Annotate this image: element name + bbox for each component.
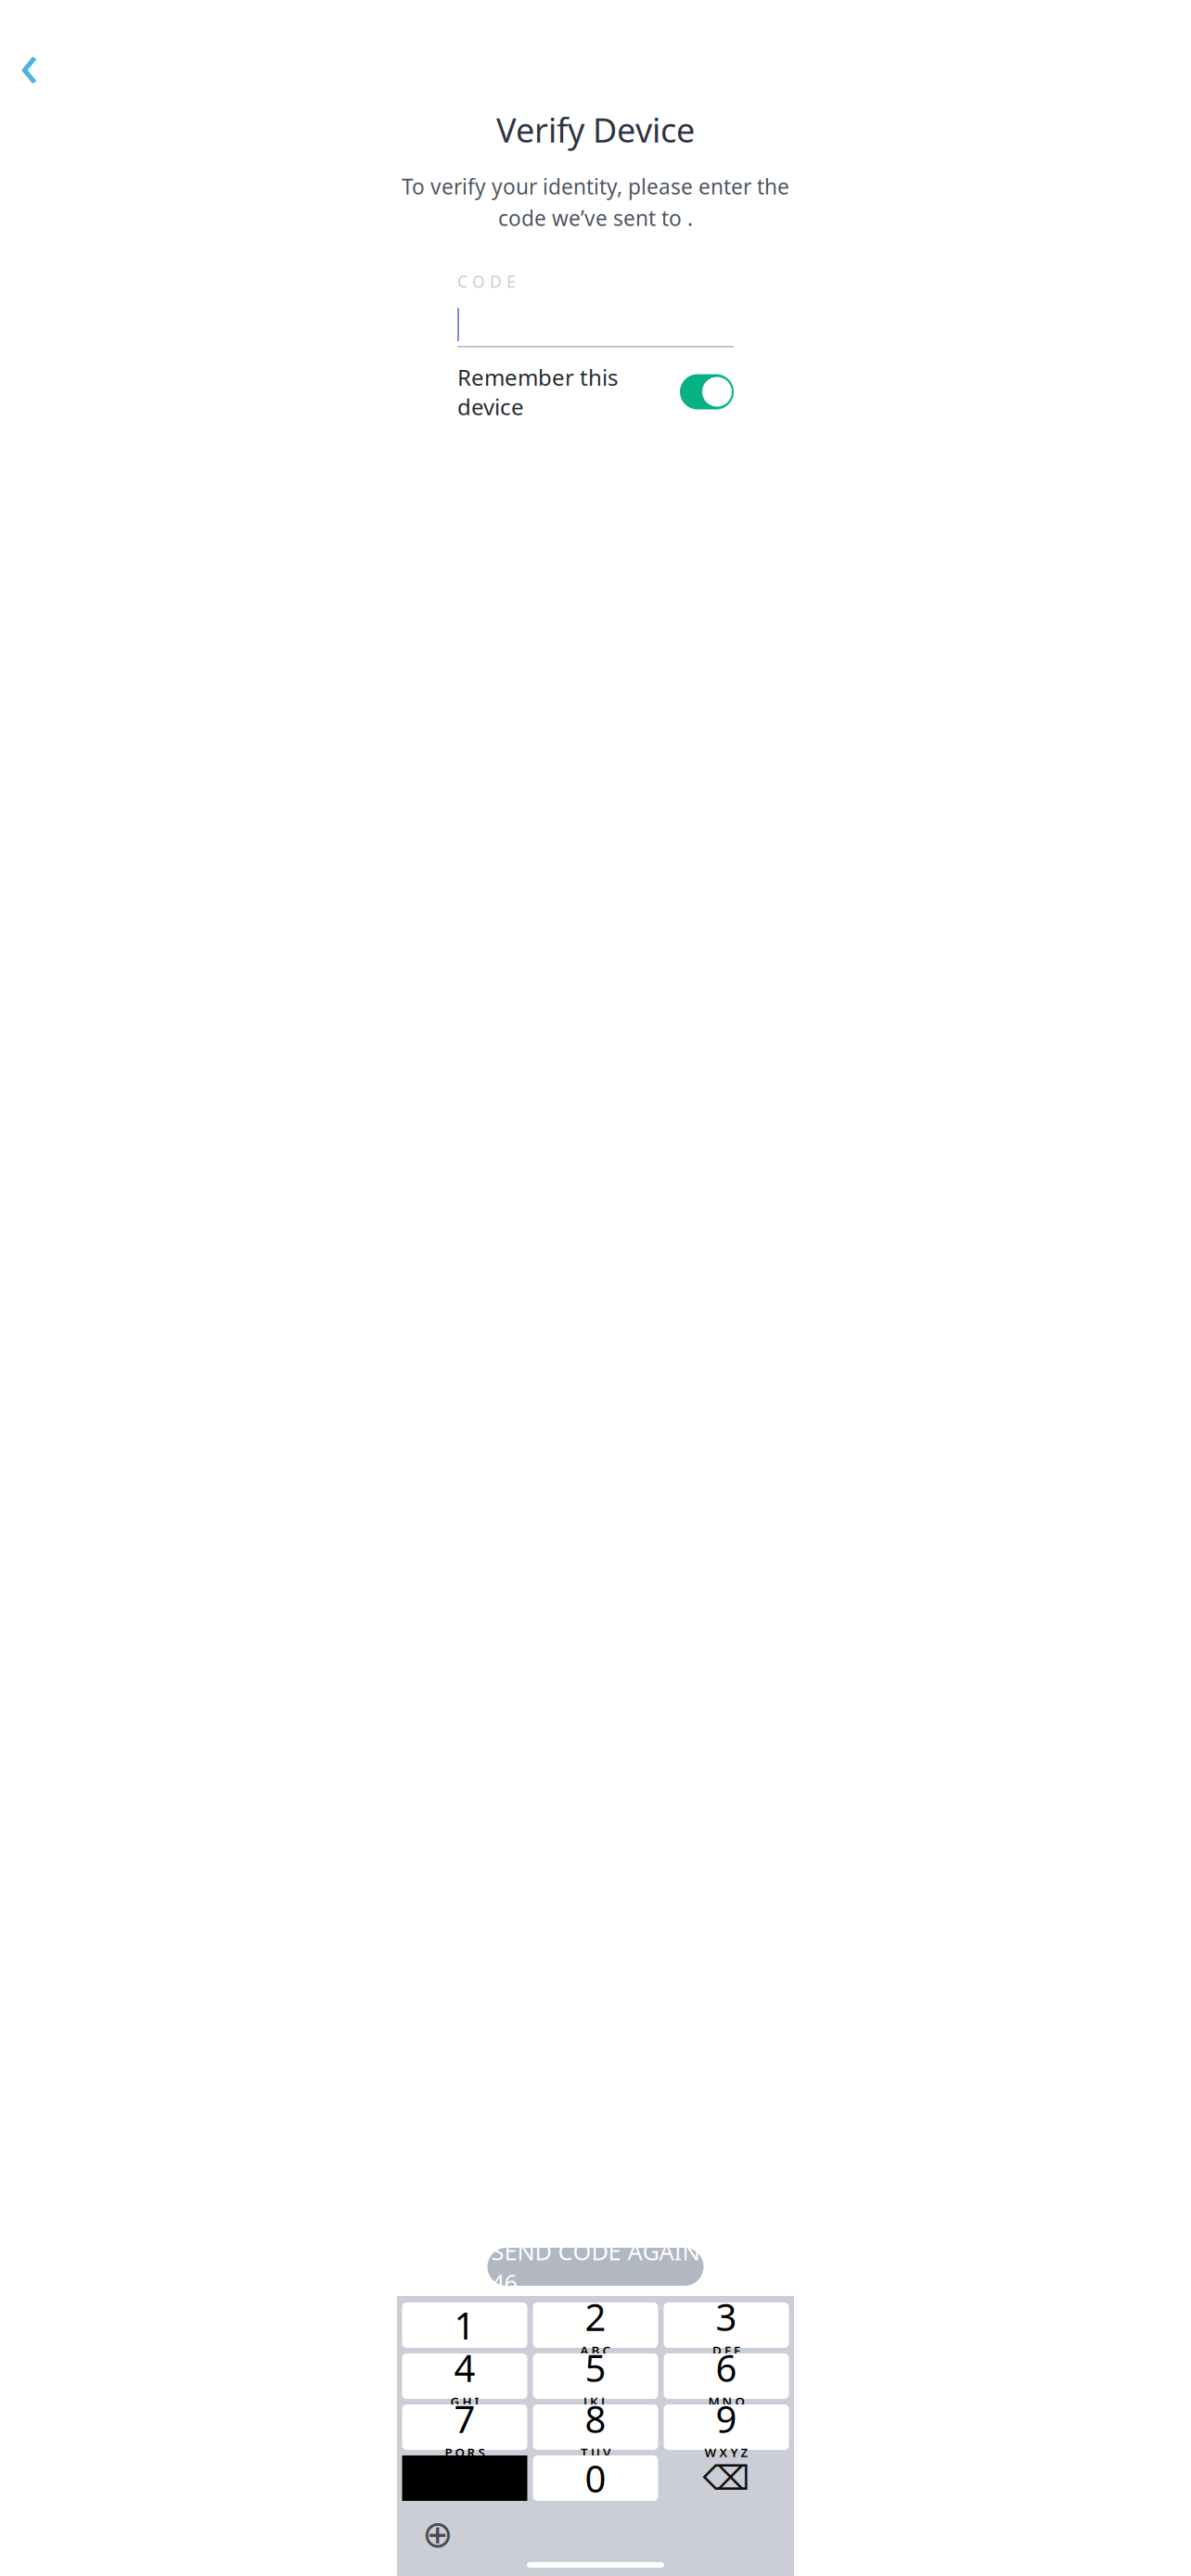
staticText: ⊕ [422,2513,454,2555]
button[interactable]: 3 [664,2302,789,2348]
button[interactable]: 1 [402,2302,527,2348]
staticText: 6 [716,2343,737,2392]
staticText: 9 [716,2394,737,2443]
staticText: 5 [585,2343,606,2392]
staticText: 4 [454,2343,475,2392]
button[interactable]: 8 [533,2404,658,2450]
staticText: To verify your identity, please enter th… [402,172,789,200]
button[interactable]: Delete [664,2455,789,2501]
staticText: 2 [585,2292,606,2341]
button[interactable]: 6 [664,2353,789,2399]
staticText: 3 [716,2292,737,2341]
staticText: J K L [583,2393,608,2409]
button[interactable]: 2 [533,2302,658,2348]
staticText: T U V [581,2444,610,2460]
staticText: 8 [585,2394,606,2443]
button[interactable]: SEND CODE AGAIN 46 [487,2248,704,2286]
staticText: C O D E [457,271,516,292]
button[interactable]: Remember this device [457,371,734,412]
staticText: Verify Device [496,108,695,152]
staticText: code we’ve sent to . [498,204,693,232]
staticText: ‹ [19,19,38,105]
staticText: W X Y Z [704,2444,748,2460]
button[interactable]: Back [7,41,50,83]
staticText: P Q R S [445,2444,485,2460]
staticText: G H I [450,2393,479,2409]
staticText: 1 [454,2301,475,2350]
staticText: D E F [712,2342,740,2358]
button[interactable]: Switch keyboard [417,2514,458,2555]
staticText: ⌫ [703,2459,750,2497]
button[interactable]: 4 [402,2353,527,2399]
staticText: SEND CODE AGAIN 46 [491,2236,700,2298]
button[interactable]: 0 [533,2455,658,2501]
staticText: 0 [585,2454,606,2503]
staticText: 7 [454,2394,475,2443]
staticText: A B C [580,2342,611,2358]
button[interactable]: 5 [533,2353,658,2399]
button[interactable]: 9 [664,2404,789,2450]
button[interactable]: 7 [402,2404,527,2450]
staticText: Remember this device [457,362,618,421]
staticText: M N O [708,2393,744,2409]
